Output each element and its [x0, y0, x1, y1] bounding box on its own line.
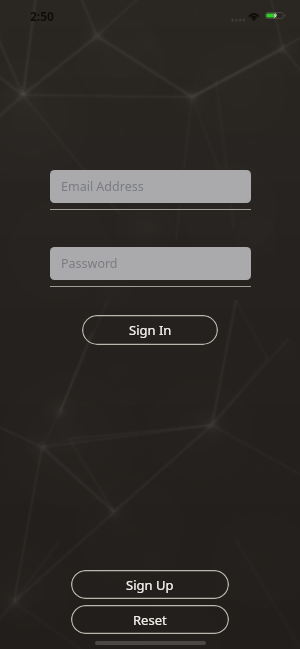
- staticText: Password: [61, 255, 118, 272]
- other: Battery charging: [265, 12, 286, 19]
- button[interactable]: Reset: [71, 605, 229, 634]
- button[interactable]: Sign Up: [71, 570, 229, 599]
- staticText: Email Address: [61, 178, 144, 195]
- staticText: Reset: [133, 611, 167, 629]
- staticText: Sign Up: [126, 576, 174, 594]
- staticText: Sign In: [129, 321, 172, 339]
- button[interactable]: Sign In: [82, 315, 218, 345]
- button[interactable]: Password: [50, 247, 251, 280]
- staticText: 2:50: [30, 8, 54, 24]
- other: Cellular signal: [231, 17, 246, 22]
- other: Wi-Fi: [248, 11, 260, 20]
- button[interactable]: Email Address: [50, 170, 251, 203]
